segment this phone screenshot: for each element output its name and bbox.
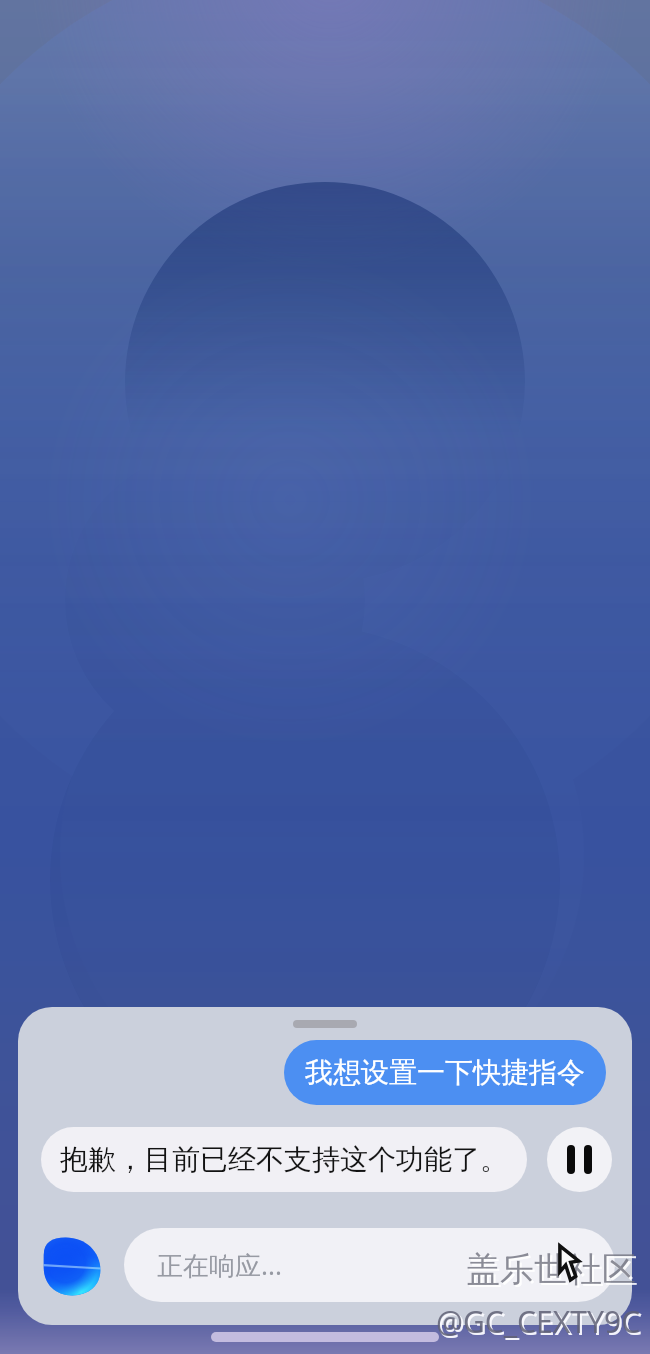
staticText: 盖乐世社区 [466, 1248, 636, 1291]
button[interactable]: 我想设置一下快捷指令 [284, 1040, 606, 1105]
button[interactable]: 抱歉，目前已经不支持这个功能了。 [41, 1127, 527, 1192]
staticText: @GC_CEXTY9C [438, 1303, 643, 1344]
staticText: 正在响应... [157, 1247, 282, 1283]
staticText: 抱歉，目前已经不支持这个功能了。 [60, 1142, 508, 1177]
staticText: @GC_CEXTY9C [436, 1301, 641, 1342]
staticText: 盖乐世社区 [468, 1250, 638, 1293]
staticText: 我想设置一下快捷指令 [305, 1055, 585, 1090]
button[interactable]: 正在响应... [124, 1228, 615, 1302]
button[interactable]: Pause [547, 1127, 612, 1192]
